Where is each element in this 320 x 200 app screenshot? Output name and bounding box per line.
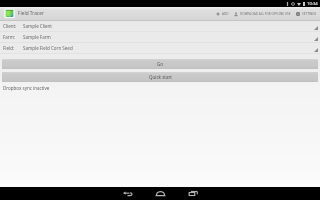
staticText: Sample Field Corn Seed — [23, 45, 73, 51]
button[interactable]: DOWNLOAD ALL FOR OFFLINE USE — [234, 12, 291, 16]
staticText: Quick start — [149, 74, 172, 80]
staticText: DOWNLOAD ALL FOR OFFLINE USE — [240, 12, 291, 16]
staticText: Client: — [3, 23, 23, 29]
button[interactable]: Home — [155, 187, 166, 200]
button[interactable]: Client: — [0, 21, 320, 31]
button[interactable]: Farm: — [0, 32, 320, 42]
staticText: Go — [157, 61, 163, 67]
staticText: 10:34 — [307, 1, 318, 7]
staticText: Sample Client — [23, 23, 52, 29]
button[interactable]: SETTINGS — [296, 12, 317, 16]
staticText: Sample Farm — [23, 34, 51, 40]
button[interactable]: Field: — [0, 43, 320, 53]
staticText: Field: — [3, 45, 23, 51]
button[interactable]: ADD — [216, 12, 229, 16]
staticText: SETTINGS — [302, 12, 317, 16]
button[interactable]: Back — [122, 187, 133, 200]
staticText: ADD — [222, 12, 229, 16]
button[interactable]: Go — [2, 59, 318, 69]
button[interactable]: Recents — [188, 187, 199, 200]
staticText: Dropbox sync inactive — [3, 85, 50, 91]
staticText: Field Tracer — [18, 10, 44, 17]
staticText: Farm: — [3, 34, 23, 40]
button[interactable]: Quick start — [2, 72, 318, 82]
